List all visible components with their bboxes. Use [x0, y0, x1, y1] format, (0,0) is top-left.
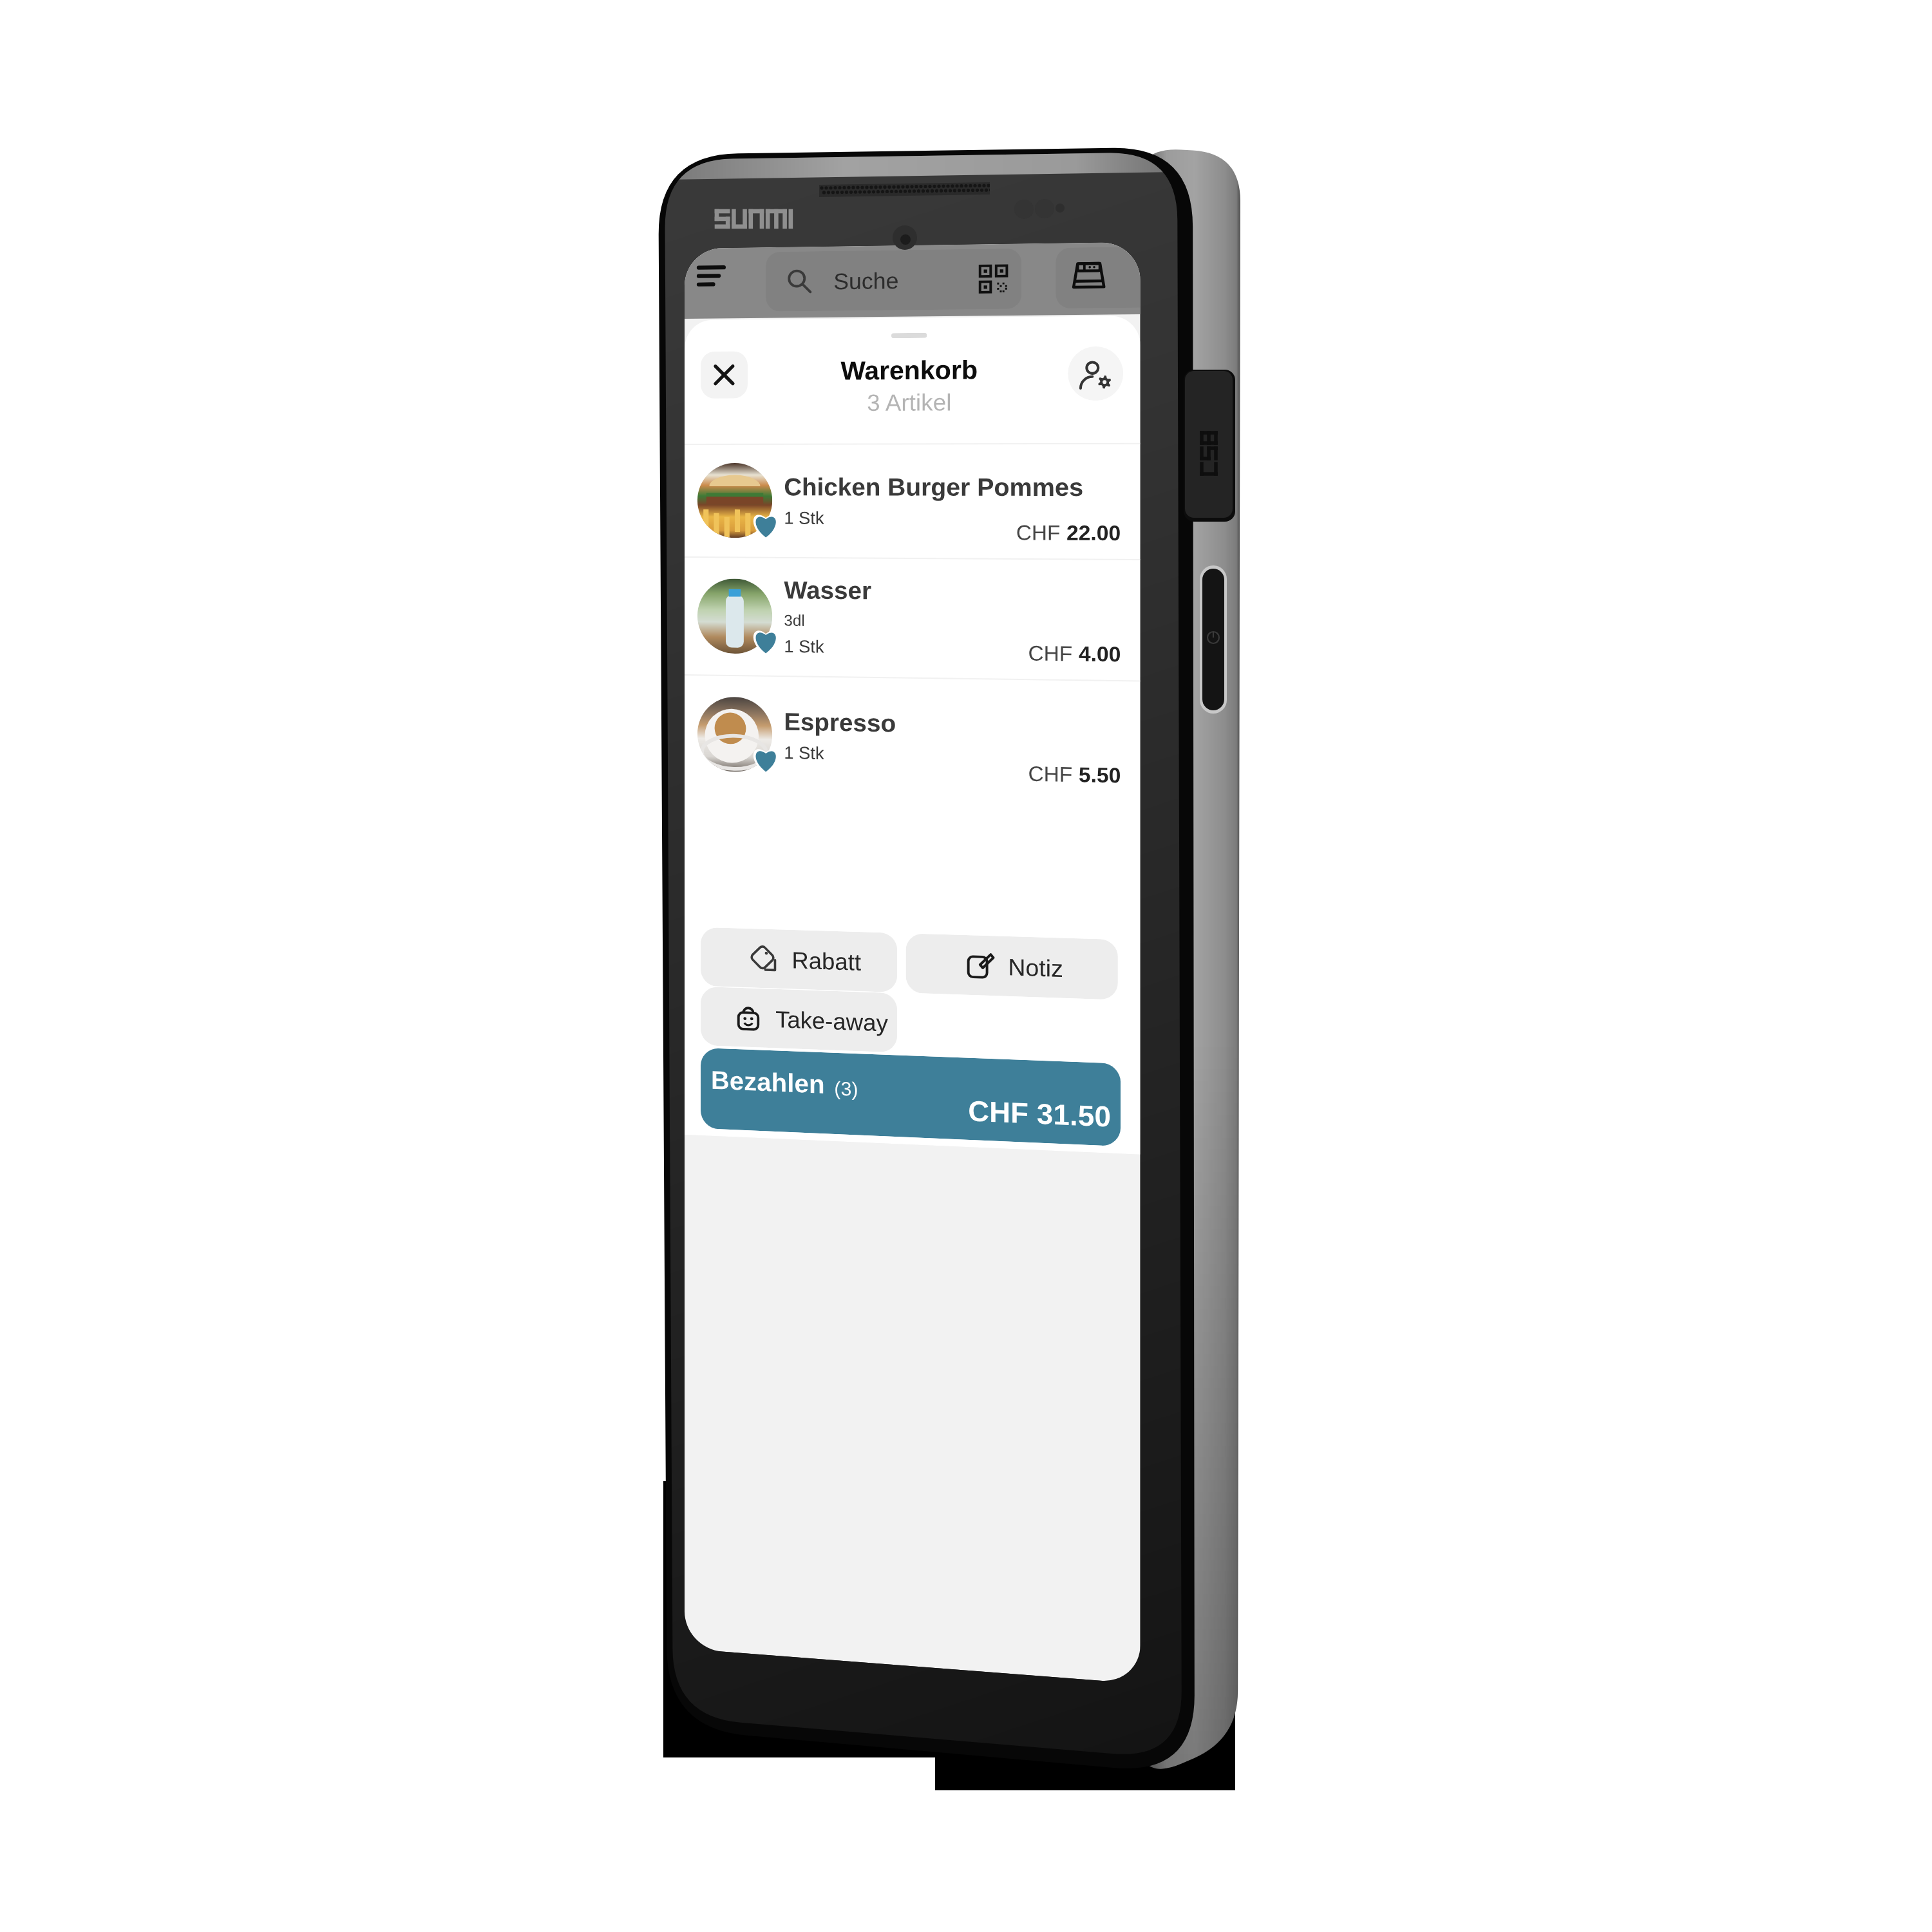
staticText: CHF — [1028, 641, 1073, 666]
staticText: 1 Stk — [784, 743, 824, 763]
staticText: (3) — [834, 1077, 858, 1101]
staticText: CHF — [1028, 762, 1073, 786]
staticText: 1 Stk — [784, 508, 824, 528]
staticText: Rabatt — [792, 947, 862, 975]
button[interactable]: Wasser — [685, 556, 1140, 680]
staticText: 4.00 — [1079, 642, 1121, 666]
staticText: Notiz — [1008, 954, 1064, 982]
button[interactable]: Menü — [690, 254, 732, 297]
staticText: Bezahlen — [711, 1066, 825, 1099]
staticText: CHF 31.50 — [968, 1095, 1111, 1133]
staticText: 3 Artikel — [867, 389, 952, 415]
staticText: 1 Stk — [784, 637, 824, 657]
staticText: Wasser — [784, 576, 872, 604]
button[interactable]: Kunde — [1068, 346, 1123, 401]
staticText: Espresso — [784, 708, 897, 737]
staticText: CHF — [1016, 521, 1060, 545]
button[interactable]: Espresso — [685, 674, 1140, 802]
button[interactable]: Suche — [766, 248, 1021, 312]
staticText: 3dl — [784, 611, 805, 629]
staticText: 5.50 — [1079, 763, 1121, 787]
button[interactable]: Chicken Burger Pommes — [685, 443, 1140, 559]
staticText: Chicken Burger Pommes — [784, 473, 1083, 501]
button[interactable]: Rabatt — [701, 927, 897, 992]
button[interactable]: Kasse — [1056, 247, 1140, 309]
staticText: 22.00 — [1067, 521, 1121, 545]
staticText: Suche — [834, 268, 899, 294]
button[interactable]: Notiz — [906, 933, 1118, 1000]
button[interactable]: Bezahlen — [701, 1048, 1121, 1146]
button[interactable]: Take-away — [701, 986, 897, 1053]
staticText: Take-away — [776, 1006, 889, 1036]
button[interactable]: Schliessen — [701, 351, 748, 399]
staticText: Warenkorb — [841, 355, 978, 385]
